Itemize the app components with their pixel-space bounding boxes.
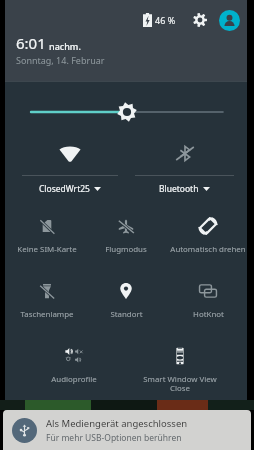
staticText: Smart Window View Close <box>143 374 217 394</box>
staticText: Sonntag, 14. Februar <box>16 54 105 66</box>
button[interactable]: Bluetooth <box>135 132 234 200</box>
button[interactable]: User profile <box>219 10 240 31</box>
button[interactable]: Location <box>85 279 167 339</box>
staticText: HotKnot <box>193 309 224 320</box>
staticText: Standort <box>110 309 143 320</box>
button[interactable]: Audio profile <box>33 344 115 404</box>
staticText: Bluetooth <box>159 183 199 195</box>
button[interactable]: Settings <box>189 9 211 31</box>
button[interactable]: No SIM card <box>6 214 88 274</box>
staticText: Audioprofile <box>51 374 97 385</box>
staticText: Für mehr USB-Optionen berühren <box>46 432 182 444</box>
button[interactable]: Als Mediengerät angeschlossen <box>3 410 251 450</box>
staticText: 46 % <box>155 14 176 26</box>
staticText: Als Mediengerät angeschlossen <box>46 417 188 430</box>
button[interactable]: Smart window view <box>139 344 221 404</box>
button[interactable]: Brightness <box>5 0 247 450</box>
staticText: Keine SIM-Karte <box>17 244 77 255</box>
staticText: Flugmodus <box>105 244 147 255</box>
staticText: nachm. <box>49 40 81 52</box>
button[interactable]: Flashlight <box>6 279 88 339</box>
button[interactable]: Airplane mode <box>85 214 167 274</box>
button[interactable]: Auto rotate <box>167 214 249 274</box>
staticText: ClosedWrt25 <box>39 183 90 195</box>
button[interactable]: ClosedWrt25 <box>22 132 118 200</box>
button[interactable]: HotKnot <box>167 279 249 339</box>
staticText: Taschenlampe <box>20 309 74 320</box>
staticText: 6:01 <box>16 33 46 53</box>
staticText: Automatisch drehen <box>170 244 246 255</box>
